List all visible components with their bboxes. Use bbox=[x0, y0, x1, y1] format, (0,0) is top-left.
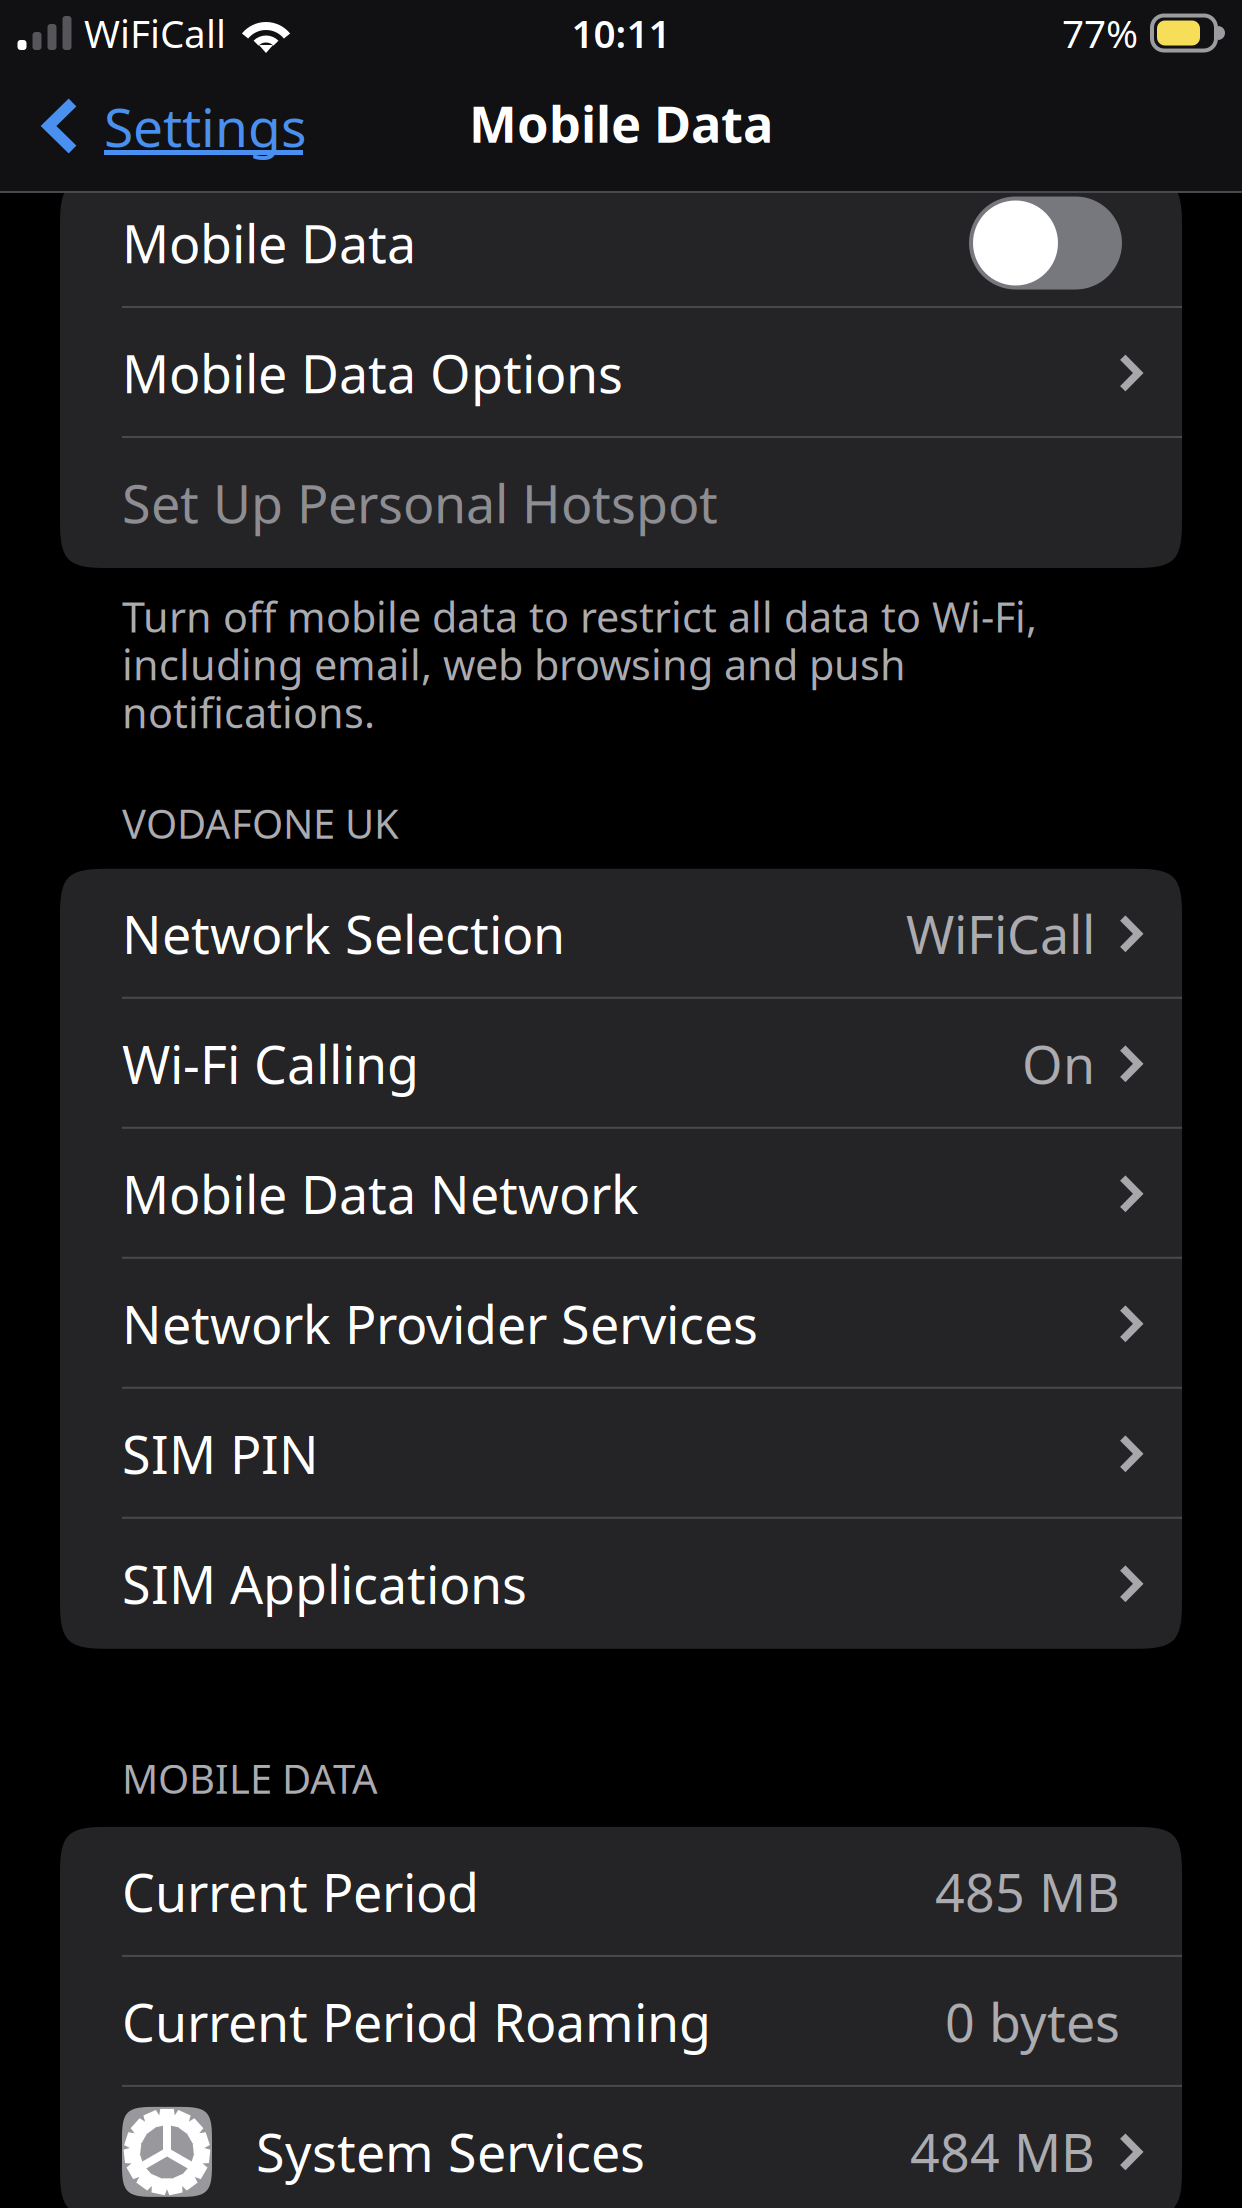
button[interactable]: Network Provider Services bbox=[60, 1259, 1182, 1389]
staticText: 485 MB bbox=[935, 1857, 1120, 1926]
staticText: 0 bytes bbox=[945, 1987, 1120, 2056]
button[interactable]: Set Up Personal Hotspot bbox=[60, 438, 1182, 568]
staticText: Network Provider Services bbox=[122, 1289, 758, 1358]
button[interactable]: Settings bbox=[39, 98, 329, 170]
staticText: SIM Applications bbox=[122, 1549, 527, 1618]
staticText: Settings bbox=[104, 91, 307, 162]
staticText: Set Up Personal Hotspot bbox=[122, 468, 718, 538]
button[interactable]: Current Period bbox=[60, 1827, 1182, 1957]
staticText: Network Selection bbox=[122, 899, 565, 968]
staticText: Current Period bbox=[122, 1857, 479, 1926]
staticText: 10:11 bbox=[571, 7, 670, 59]
staticText: VODAFONE UK bbox=[122, 797, 399, 850]
staticText: WiFiCall bbox=[84, 7, 226, 59]
staticText: 484 MB bbox=[910, 2117, 1095, 2186]
button[interactable]: Current Period Roaming bbox=[60, 1957, 1182, 2087]
staticText: Mobile Data bbox=[122, 208, 416, 278]
staticText: MOBILE DATA bbox=[122, 1752, 378, 1805]
button[interactable]: SIM Applications bbox=[60, 1519, 1182, 1649]
staticText: Wi-Fi Calling bbox=[122, 1029, 419, 1098]
button[interactable]: Mobile Data Network bbox=[60, 1129, 1182, 1259]
button[interactable]: Mobile Data bbox=[969, 196, 1122, 289]
staticText: 77% bbox=[1062, 7, 1138, 59]
staticText: Mobile Data bbox=[469, 89, 773, 157]
button[interactable]: Mobile Data Options bbox=[60, 308, 1182, 438]
staticText: Mobile Data Network bbox=[122, 1159, 639, 1228]
staticText: WiFiCall bbox=[906, 899, 1095, 968]
button[interactable]: Wi-Fi Calling bbox=[60, 999, 1182, 1129]
staticText: System Services bbox=[256, 2117, 645, 2186]
staticText: Current Period Roaming bbox=[122, 1987, 711, 2056]
staticText: Turn off mobile data to restrict all dat… bbox=[122, 589, 1037, 740]
button[interactable]: SIM PIN bbox=[60, 1389, 1182, 1519]
button[interactable]: System Services bbox=[60, 2087, 1182, 2208]
staticText: Mobile Data Options bbox=[122, 338, 623, 408]
staticText: On bbox=[1022, 1029, 1095, 1098]
staticText: SIM PIN bbox=[122, 1419, 319, 1488]
button[interactable]: Network Selection bbox=[60, 869, 1182, 999]
